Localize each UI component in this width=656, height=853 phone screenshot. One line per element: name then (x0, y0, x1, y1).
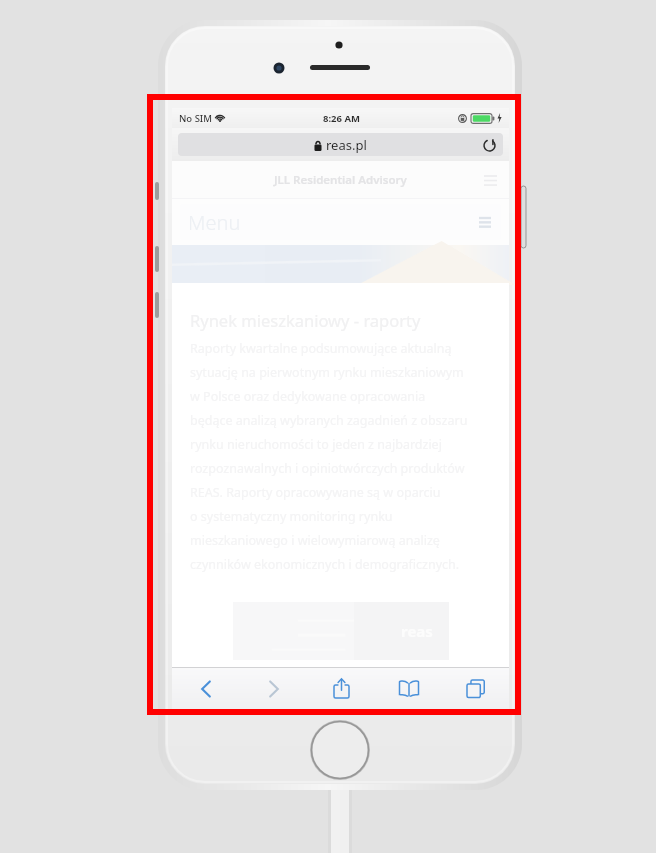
staticText: REAS. Raporty opracowywane są w oparciu (190, 484, 441, 501)
staticText: No SIM (179, 112, 212, 125)
staticText: Raporty kwartalne podsumowujące aktualną (190, 340, 452, 357)
button[interactable]: Reload (479, 135, 499, 155)
staticText: czynników ekonomicznych i demograficznyc… (190, 556, 460, 573)
staticText: reas (401, 621, 433, 641)
button[interactable]: Forward (240, 668, 308, 709)
staticText: o systematyczny monitoring rynku (190, 508, 393, 525)
staticText: mieszkaniowego i wielowymiarową analizę (190, 532, 440, 549)
staticText: Menu (188, 209, 241, 236)
button[interactable]: Bookmarks (375, 668, 442, 709)
button[interactable]: Tabs (442, 668, 509, 709)
staticText: Rynek mieszkaniowy - raporty (190, 309, 421, 331)
button[interactable]: Back (172, 668, 240, 709)
button[interactable]: reas.pl (178, 133, 503, 156)
button[interactable]: Share (308, 668, 375, 709)
staticText: rozpoznawalnych i opiniotwórczych produk… (190, 460, 465, 477)
staticText: sytuację na pierwotnym rynku mieszkaniow… (190, 364, 464, 381)
staticText: 8:26 AM (323, 112, 360, 125)
staticText: rynku nieruchomości to jeden z najbardzi… (190, 436, 442, 453)
staticText: w Polsce oraz dedykowane opracowania (190, 388, 426, 405)
staticText: reas.pl (326, 136, 367, 154)
staticText: JLL Residential Advisory (274, 172, 407, 188)
staticText: będące analizą wybranych zagadnień z obs… (190, 412, 468, 429)
